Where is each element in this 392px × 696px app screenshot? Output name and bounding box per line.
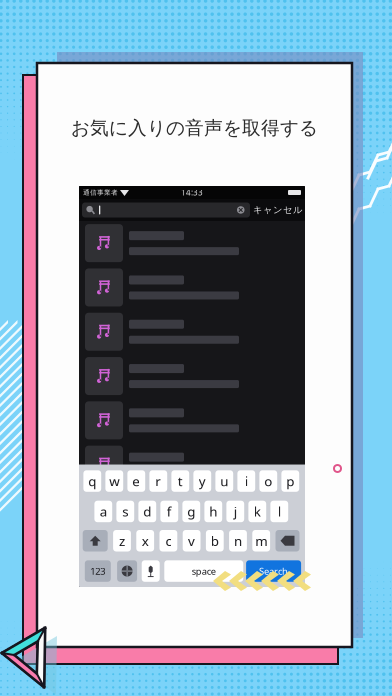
button[interactable]	[79, 265, 305, 310]
button[interactable]: s	[116, 501, 134, 522]
staticText: space	[192, 565, 216, 577]
staticText: v	[188, 532, 195, 550]
button[interactable]	[79, 221, 305, 265]
button[interactable]: q	[83, 470, 101, 492]
staticText: x	[142, 532, 149, 550]
button[interactable]: n	[229, 530, 247, 551]
button[interactable]: Search	[246, 560, 301, 582]
button[interactable]: f	[160, 501, 178, 522]
staticText: u	[220, 472, 228, 490]
staticText: q	[88, 472, 96, 490]
button[interactable]: Switch keyboard	[117, 560, 137, 582]
staticText: m	[255, 532, 267, 550]
button[interactable]: o	[259, 470, 277, 492]
button[interactable]: u	[215, 470, 233, 492]
button[interactable]: 123	[85, 560, 111, 582]
button[interactable]	[79, 354, 305, 398]
button[interactable]: z	[113, 530, 131, 551]
button[interactable]: space	[164, 560, 243, 582]
staticText: お気に入りの音声を取得する	[71, 116, 318, 139]
button[interactable]	[79, 442, 305, 487]
button[interactable]	[79, 398, 305, 442]
staticText: d	[143, 503, 151, 520]
staticText: c	[165, 532, 171, 550]
button[interactable]: t	[171, 470, 189, 492]
staticText: Search	[259, 565, 288, 577]
button[interactable]: e	[127, 470, 145, 492]
staticText: i	[245, 472, 248, 490]
button[interactable]: d	[138, 501, 156, 522]
staticText: e	[132, 472, 140, 490]
button[interactable]: Shift	[83, 530, 108, 551]
staticText: 123	[90, 565, 105, 577]
staticText: f	[167, 503, 172, 520]
staticText: k	[254, 503, 261, 520]
button[interactable]: l	[270, 501, 288, 522]
staticText: z	[119, 532, 125, 550]
button[interactable]: b	[206, 530, 224, 551]
staticText: a	[100, 503, 107, 520]
button[interactable]: i	[237, 470, 255, 492]
staticText: l	[278, 503, 281, 520]
staticText: 14:33	[181, 187, 203, 198]
staticText: r	[155, 472, 161, 490]
button[interactable]: j	[226, 501, 244, 522]
staticText: 通信事業者	[83, 188, 118, 197]
staticText: t	[178, 472, 183, 490]
button[interactable]: a	[94, 501, 112, 522]
staticText: s	[122, 503, 128, 520]
button[interactable]: h	[204, 501, 222, 522]
staticText: キャンセル	[253, 204, 303, 216]
staticText: b	[211, 532, 219, 550]
staticText: w	[109, 472, 119, 490]
button[interactable]: g	[182, 501, 200, 522]
staticText: g	[187, 503, 195, 520]
staticText: y	[199, 472, 206, 490]
staticText: n	[234, 532, 242, 550]
button[interactable]: p	[281, 470, 299, 492]
button[interactable]: m	[252, 530, 270, 551]
button[interactable]: Delete	[275, 530, 299, 551]
button[interactable]: Dictate	[142, 560, 160, 582]
button[interactable]: y	[193, 470, 211, 492]
staticText: j	[234, 503, 237, 520]
staticText: o	[264, 472, 272, 490]
staticText: h	[209, 503, 217, 520]
button[interactable]: w	[105, 470, 123, 492]
button[interactable]: v	[183, 530, 200, 551]
button[interactable]: c	[159, 530, 177, 551]
button[interactable]: r	[149, 470, 167, 492]
button[interactable]	[79, 310, 305, 354]
staticText: p	[286, 472, 294, 490]
button[interactable]: x	[136, 530, 154, 551]
button[interactable]: k	[248, 501, 266, 522]
button[interactable]: キャンセル	[253, 202, 303, 217]
